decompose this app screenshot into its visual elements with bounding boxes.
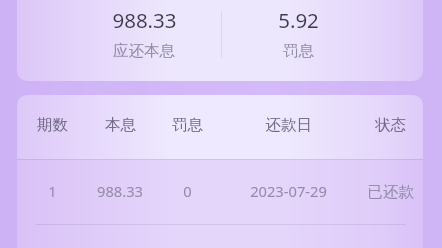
staticText: 应还本息	[113, 41, 175, 61]
staticText: 已还款	[367, 182, 414, 202]
staticText: 罚息	[172, 115, 203, 135]
staticText: 还款日	[265, 115, 312, 135]
button[interactable]: 988.33	[17, 0, 423, 81]
staticText: 5.92	[278, 6, 319, 34]
button[interactable]: 期数 1 本息 988.33 罚息 0 还款日 2023-07-29 已还款	[17, 160, 423, 224]
staticText: 期数	[37, 115, 68, 135]
staticText: 本息	[105, 115, 136, 135]
staticText: 1	[48, 181, 57, 201]
staticText: 0	[183, 181, 192, 201]
staticText: 状态	[375, 115, 406, 135]
staticText: 2023-07-29	[250, 181, 327, 201]
staticText: 988.33	[112, 6, 177, 34]
staticText: 罚息	[283, 41, 314, 61]
staticText: 988.33	[97, 181, 143, 201]
